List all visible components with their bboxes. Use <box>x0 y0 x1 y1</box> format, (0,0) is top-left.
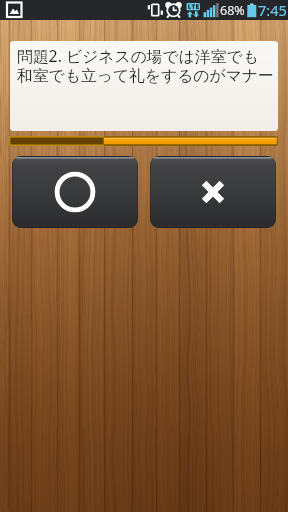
button[interactable]: Batsu (wrong) <box>150 156 276 228</box>
button[interactable]: Maru (correct) <box>12 156 138 228</box>
staticText: 68% <box>220 2 245 19</box>
staticText: 7:45 <box>258 0 287 20</box>
staticText: 問題2. ビジネスの場では洋室でも 和室でも立って礼をするのがマナー <box>17 45 274 85</box>
